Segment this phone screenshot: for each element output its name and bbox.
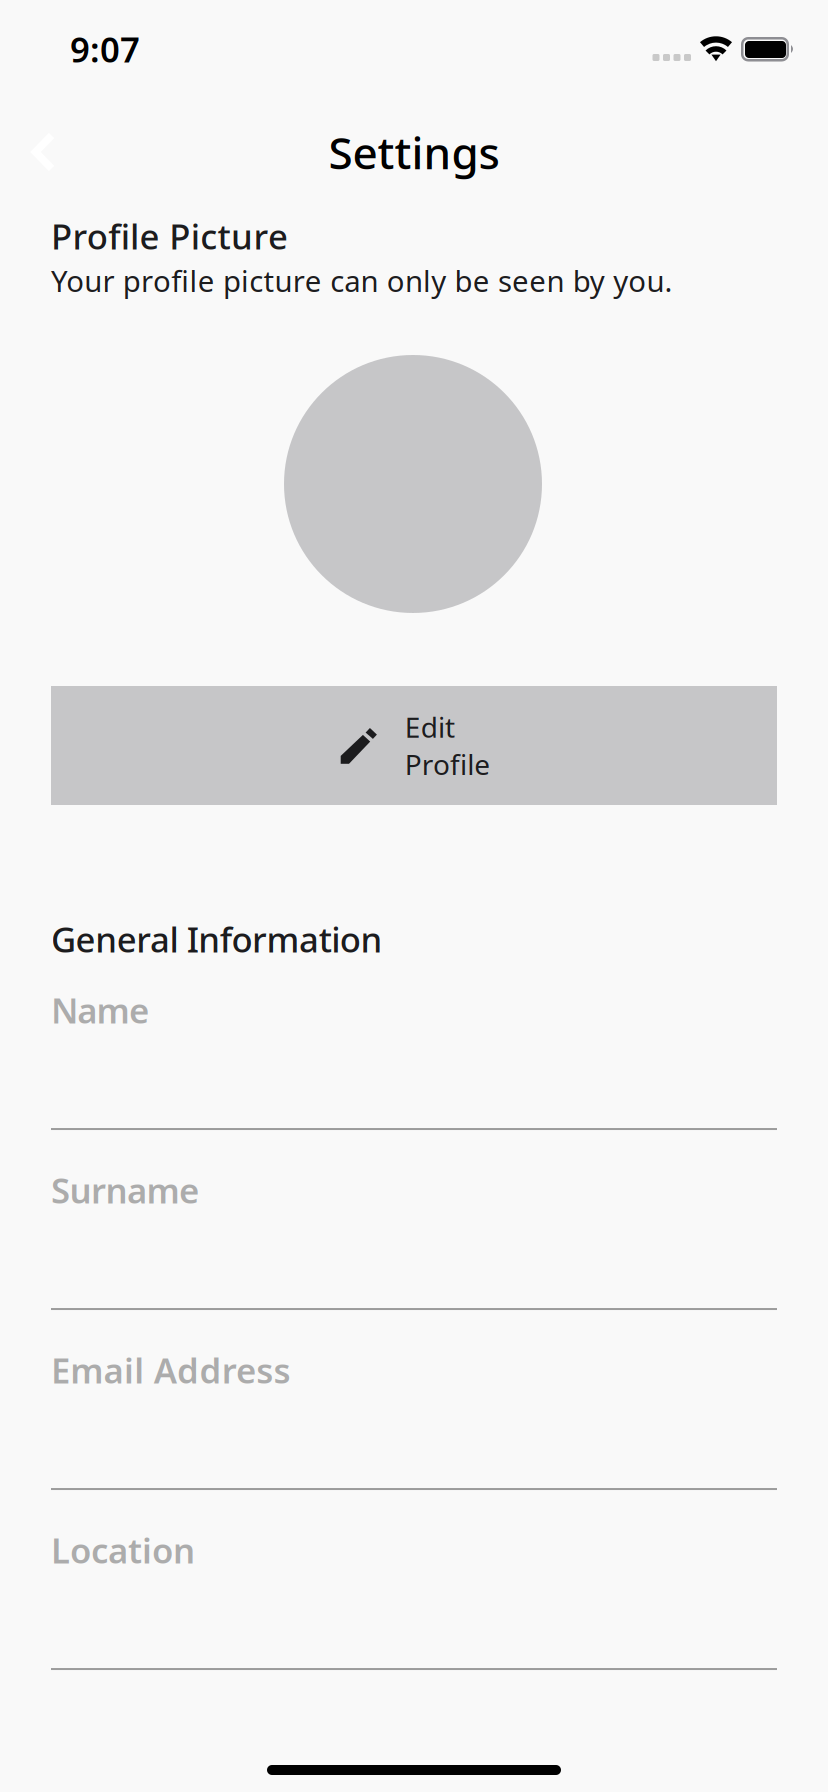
staticText: Email Address bbox=[51, 1347, 291, 1393]
button[interactable]: Email Address bbox=[51, 1336, 777, 1516]
staticText: Settings bbox=[328, 123, 499, 181]
staticText: Profile Picture bbox=[51, 213, 288, 259]
staticText: Surname bbox=[51, 1167, 199, 1213]
staticText: 9:07 bbox=[70, 26, 140, 72]
button[interactable]: Surname bbox=[51, 1156, 777, 1336]
button[interactable]: Edit Profile bbox=[51, 686, 777, 805]
button[interactable]: Name bbox=[51, 976, 777, 1156]
staticText: Name bbox=[51, 987, 149, 1033]
staticText: General Information bbox=[51, 916, 382, 962]
staticText: Location bbox=[51, 1527, 195, 1573]
staticText: Edit Profile bbox=[405, 708, 490, 783]
button[interactable]: Location bbox=[51, 1516, 777, 1696]
staticText: Your profile picture can only be seen by… bbox=[51, 261, 673, 300]
